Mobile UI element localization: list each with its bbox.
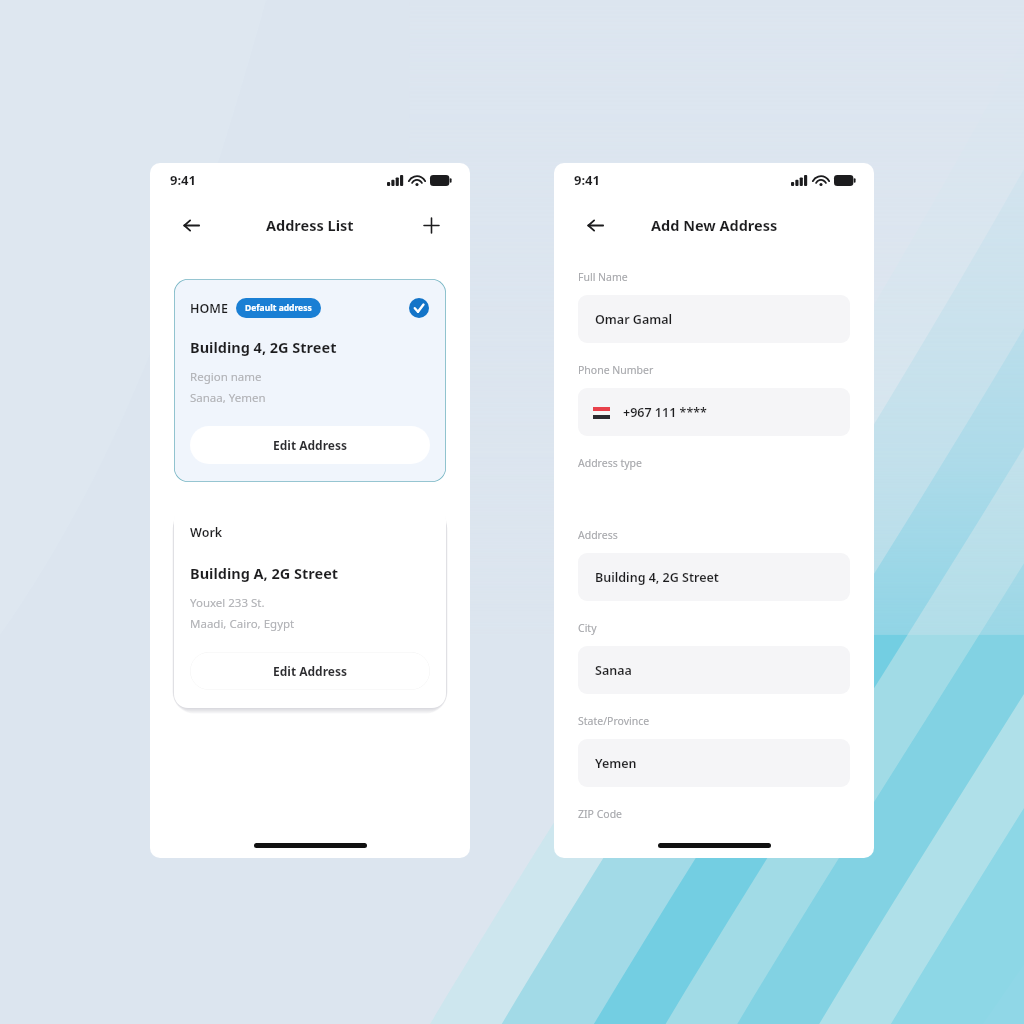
button[interactable]: Sanaa [578,646,850,694]
staticText: HOME [190,300,228,317]
button[interactable]: HOME [174,279,446,482]
staticText: Yemen [595,755,637,772]
button[interactable]: Edit Address [190,652,430,690]
staticText: Sanaa [595,662,632,679]
staticText: Phone Number [578,363,654,377]
staticText: Address List [266,215,354,235]
staticText: Work [190,524,223,541]
staticText: Default address [245,302,312,314]
staticText: Address [578,528,618,542]
staticText: Full Name [578,270,628,284]
staticText: Edit Address [273,663,348,679]
button[interactable]: Yemen [578,739,850,787]
staticText: Maadi, Cairo, Egypt [190,616,295,632]
staticText: Address type [578,456,642,470]
staticText: ZIP Code [578,807,623,821]
staticText: Edit Address [273,437,348,453]
staticText: Building A, 2G Street [190,563,339,583]
staticText: Add New Address [651,215,778,235]
staticText: Building 4, 2G Street [595,569,719,586]
button[interactable]: Edit Address [190,426,430,464]
staticText: Omar Gamal [595,311,673,328]
staticText: Youxel 233 St. [190,595,265,611]
button[interactable]: Building 4, 2G Street [578,553,850,601]
button[interactable]: Omar Gamal [578,295,850,343]
button[interactable]: Work [174,506,446,708]
staticText: Sanaa, Yemen [190,390,266,406]
staticText: City [578,621,597,635]
button[interactable]: Back [580,210,610,240]
button[interactable]: Default selected [408,297,430,319]
staticText: 9:41 [574,171,600,189]
staticText: Building 4, 2G Street [190,337,337,357]
staticText: Region name [190,369,262,385]
button[interactable]: +967 111 **** [578,388,850,436]
staticText: +967 111 **** [623,404,707,421]
staticText: 9:41 [170,171,196,189]
staticText: State/Province [578,714,650,728]
button[interactable]: Add address [416,210,446,240]
button[interactable]: Back [176,210,206,240]
